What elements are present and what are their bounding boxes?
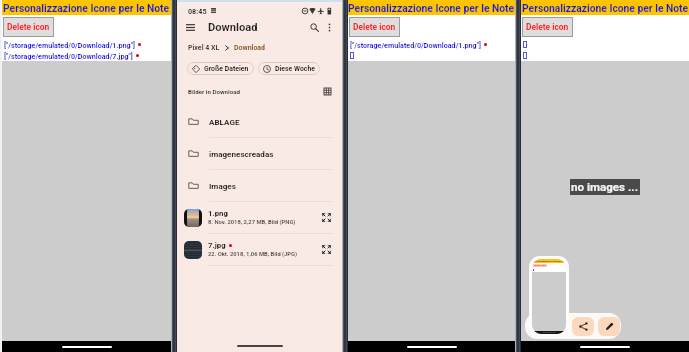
staticText: ["/storage/emulated/0/Download/7.jpg"] xyxy=(4,52,133,60)
button[interactable]: Images xyxy=(177,170,342,201)
button[interactable]: ABLAGE xyxy=(177,106,342,137)
staticText: 8. Nov. 2018, 2,27 MB, Bild (PNG) xyxy=(208,219,296,226)
button[interactable]: Delete icon xyxy=(3,17,54,37)
staticText: Personalizzazione Icone per le Note xyxy=(3,2,170,14)
button[interactable]: Open in full screen xyxy=(319,210,334,225)
staticText: Delete icon xyxy=(526,22,569,32)
staticText: Bilder in Download xyxy=(188,88,240,95)
staticText: Personalizzazione Icone per le Note xyxy=(348,2,515,14)
staticText: 08:45 xyxy=(188,7,207,15)
button[interactable]: Grid view xyxy=(322,86,333,97)
staticText: Pixel 4 XL xyxy=(188,44,220,52)
staticText: Delete icon xyxy=(7,22,50,32)
staticText: 22. Okt. 2018, 1,06 MB, Bild (JPG) xyxy=(208,251,298,258)
staticText: no images ... xyxy=(571,180,639,194)
button[interactable]: Search xyxy=(307,20,321,34)
button[interactable]: Open in full screen xyxy=(319,242,334,257)
staticText: Images xyxy=(209,181,236,190)
button[interactable]: Edit xyxy=(598,317,620,336)
staticText: Download xyxy=(208,21,258,34)
staticText: 7.jpg xyxy=(208,241,226,250)
staticText: 1.png xyxy=(208,209,228,218)
button[interactable]: Menu xyxy=(183,20,197,34)
staticText: Personalizzazione Icone per le Note xyxy=(522,2,689,14)
staticText: Diese Woche xyxy=(275,65,315,73)
staticText: imagenescreadas xyxy=(209,149,274,158)
staticText: ABLAGE xyxy=(209,117,240,126)
staticText: ["/storage/emulated/0/Download/1.png"] xyxy=(350,41,481,49)
staticText: Download xyxy=(234,44,266,52)
button[interactable]: 1.png xyxy=(177,202,342,233)
button[interactable]: Delete icon xyxy=(522,17,573,37)
button[interactable]: More options xyxy=(322,20,336,34)
button[interactable]: Share xyxy=(572,317,594,336)
button[interactable]: no images ... xyxy=(570,179,640,195)
button[interactable]: Delete icon xyxy=(349,17,400,37)
button[interactable]: Große Dateien xyxy=(187,62,254,75)
button[interactable]: 7.jpg xyxy=(177,234,342,265)
staticText: Delete icon xyxy=(353,22,396,32)
staticText: Delete icon xyxy=(534,264,546,267)
button[interactable]: imagenescreadas xyxy=(177,138,342,169)
staticText: Große Dateien xyxy=(204,65,249,73)
staticText: Personalizzazione Icone per le Note xyxy=(532,260,566,263)
staticText: ["/storage/emulated/0/Download/1.png"] xyxy=(4,41,135,49)
button[interactable]: Diese Woche xyxy=(258,62,320,75)
